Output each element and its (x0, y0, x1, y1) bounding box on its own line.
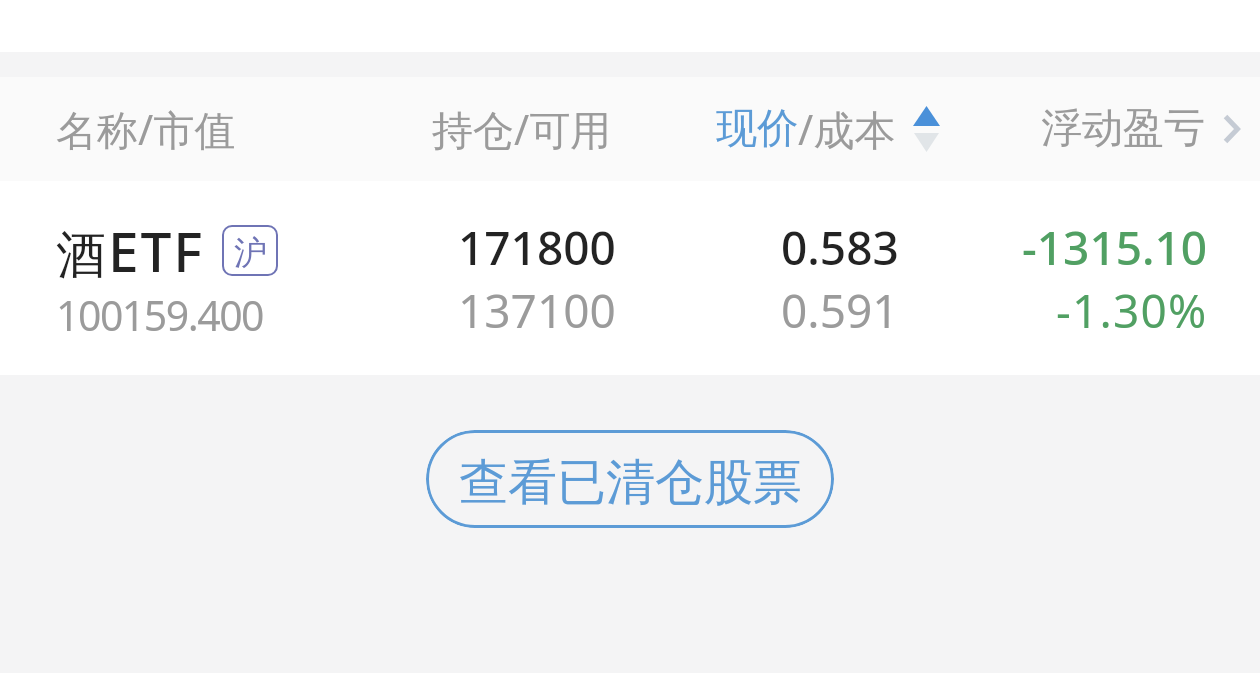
button[interactable]: 酒 (0, 181, 1260, 375)
staticText: 171800 (458, 216, 616, 279)
other: Sort ascending by price (913, 106, 940, 152)
staticText: 查看已清仓股票 (459, 452, 802, 514)
button[interactable]: 名称/市值 (30, 77, 260, 181)
staticText: 名称/市值 (56, 101, 236, 157)
staticText: 100159.400 (56, 287, 264, 343)
staticText: 持仓/可用 (432, 101, 612, 157)
staticText: 0.591 (781, 279, 899, 342)
staticText: /成本 (798, 101, 896, 157)
button[interactable]: 查看已清仓股票 (426, 430, 834, 528)
other: More columns (1223, 114, 1240, 144)
staticText: 现价 (716, 103, 798, 155)
staticText: ETF (108, 213, 204, 288)
staticText: 0.583 (781, 216, 899, 279)
button[interactable]: 现价 (690, 77, 970, 181)
staticText: -1.30% (1056, 279, 1208, 342)
staticText: -1315.10 (1022, 216, 1208, 279)
staticText: 137100 (458, 279, 616, 342)
button[interactable]: 浮动盈亏 (1010, 77, 1260, 181)
staticText: 浮动盈亏 (1041, 103, 1205, 155)
button[interactable]: 持仓/可用 (400, 77, 640, 181)
staticText: 酒 (56, 224, 106, 287)
staticText: 沪 (234, 232, 267, 274)
